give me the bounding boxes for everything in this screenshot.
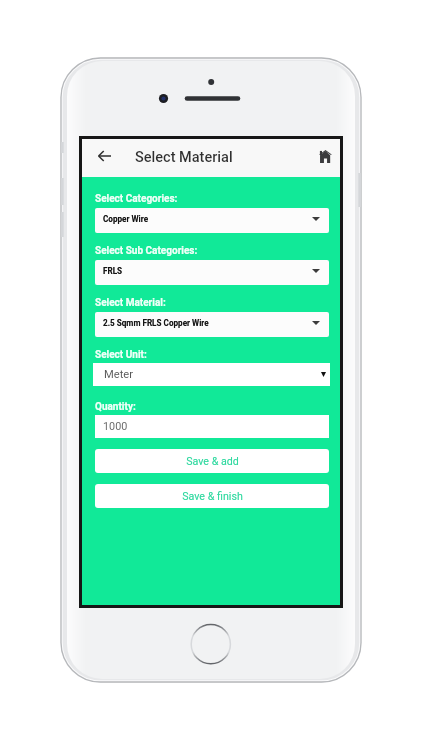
button[interactable]: Meter <box>93 363 330 386</box>
staticText: 2.5 Sqmm FRLS Copper Wire <box>103 318 209 328</box>
staticText: FRLS <box>103 266 123 276</box>
button[interactable]: FRLS <box>95 260 329 285</box>
button[interactable]: Copper Wire <box>95 208 329 233</box>
staticText: 2.5 Sqmm FRLS Copper Wire <box>103 318 209 328</box>
staticText: Meter <box>104 368 134 381</box>
button[interactable]: 2.5 Sqmm FRLS Copper Wire <box>95 312 329 337</box>
staticText: 1000 <box>103 420 128 433</box>
staticText: FRLS <box>103 266 123 276</box>
staticText: Select Sub Categories: <box>95 245 198 257</box>
staticText: Copper Wire <box>103 214 149 224</box>
button[interactable]: Home <box>312 143 338 169</box>
button[interactable]: Save & finish <box>95 484 329 508</box>
button[interactable]: Save & add <box>95 449 329 473</box>
staticText: Select Categories: <box>95 193 178 205</box>
staticText: Select Material <box>135 149 233 166</box>
staticText: Select Material: <box>95 297 166 309</box>
staticText: Save & add <box>186 455 239 468</box>
staticText: Select Unit: <box>95 349 147 361</box>
button[interactable]: 1000 <box>95 415 329 438</box>
staticText: Save & finish <box>182 490 243 503</box>
staticText: Copper Wire <box>103 214 149 224</box>
button[interactable]: Back <box>91 143 117 169</box>
staticText: Quantity: <box>95 401 136 413</box>
